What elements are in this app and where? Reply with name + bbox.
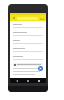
button[interactable] (17, 17, 38, 20)
button[interactable]: Recent apps (37, 79, 41, 83)
button[interactable] (13, 56, 43, 60)
button[interactable]: Back (15, 79, 19, 83)
button[interactable]: Back (12, 16, 16, 20)
button[interactable] (13, 63, 43, 66)
button[interactable] (13, 32, 43, 36)
button[interactable]: Send (38, 66, 43, 71)
button[interactable]: More options (39, 16, 44, 21)
button[interactable] (13, 40, 43, 44)
button[interactable] (13, 24, 43, 28)
button[interactable]: Home (26, 79, 30, 83)
button[interactable] (13, 48, 43, 52)
